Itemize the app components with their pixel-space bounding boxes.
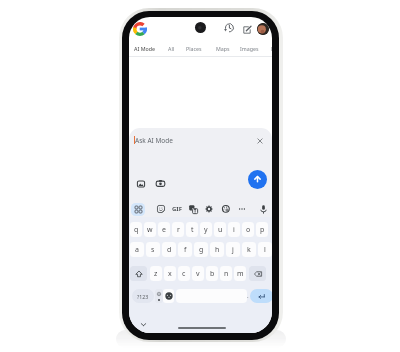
button[interactable]: Account: [257, 23, 269, 35]
button[interactable]: e: [158, 222, 170, 237]
staticText: N: [271, 45, 272, 52]
button[interactable]: Language: [163, 289, 174, 303]
button[interactable]: More options: [235, 202, 249, 216]
staticText: t: [191, 225, 194, 235]
staticText: .: [247, 292, 249, 300]
staticText: Maps: [216, 45, 230, 52]
button[interactable]: Images: [240, 45, 259, 52]
staticText: j: [232, 245, 234, 255]
button[interactable]: Camera: [155, 178, 166, 189]
button[interactable]: w: [144, 222, 156, 237]
staticText: o: [246, 225, 251, 235]
button[interactable]: b: [206, 266, 218, 281]
staticText: g: [199, 245, 204, 255]
button[interactable]: Emoji: [155, 289, 163, 303]
button[interactable]: i: [228, 222, 240, 237]
staticText: w: [147, 225, 153, 235]
button[interactable]: m: [234, 266, 246, 281]
button[interactable]: Places: [186, 45, 202, 52]
button[interactable]: .: [246, 289, 249, 303]
button[interactable]: u: [214, 222, 226, 237]
button[interactable]: Enter: [250, 289, 272, 303]
button[interactable]: k: [242, 242, 256, 257]
staticText: f: [184, 245, 187, 255]
staticText: y: [204, 225, 208, 235]
button[interactable]: Compose: [241, 24, 252, 35]
button[interactable]: c: [178, 266, 190, 281]
button[interactable]: Send: [248, 170, 267, 189]
button[interactable]: [130, 266, 147, 281]
staticText: i: [233, 225, 235, 235]
staticText: e: [162, 225, 166, 235]
staticText: n: [224, 269, 229, 279]
staticText: h: [215, 245, 220, 255]
staticText: ?123: [137, 293, 149, 300]
button[interactable]: d: [162, 242, 176, 257]
button[interactable]: l: [258, 242, 272, 257]
button[interactable]: Gallery: [135, 178, 146, 189]
button[interactable]: g: [194, 242, 208, 257]
button[interactable]: f: [178, 242, 192, 257]
button[interactable]: y: [200, 222, 212, 237]
button[interactable]: v: [192, 266, 204, 281]
button[interactable]: z: [150, 266, 162, 281]
button[interactable]: ?123: [132, 289, 154, 303]
staticText: a: [135, 245, 139, 255]
button[interactable]: q: [130, 222, 142, 237]
button[interactable]: Voice input: [256, 202, 270, 216]
button[interactable]: History: [223, 22, 235, 34]
button[interactable]: r: [172, 222, 184, 237]
staticText: v: [196, 269, 200, 279]
button[interactable]: n: [220, 266, 232, 281]
button[interactable]: j: [226, 242, 240, 257]
button[interactable]: o: [242, 222, 254, 237]
staticText: z: [154, 269, 158, 279]
button[interactable]: Close: [254, 135, 266, 147]
button[interactable]: h: [210, 242, 224, 257]
button[interactable]: t: [186, 222, 198, 237]
staticText: c: [182, 269, 186, 279]
button[interactable]: N: [271, 45, 272, 52]
staticText: q: [134, 225, 139, 235]
button[interactable]: a: [130, 242, 144, 257]
staticText: u: [218, 225, 223, 235]
button[interactable]: Maps: [216, 45, 230, 52]
button[interactable]: AI Mode: [134, 45, 156, 52]
button[interactable]: [249, 266, 266, 281]
staticText: m: [237, 269, 244, 279]
button[interactable]: p: [256, 222, 268, 237]
staticText: s: [151, 245, 155, 255]
button[interactable]: Settings: [202, 202, 216, 216]
button[interactable]: Translate: [186, 202, 200, 216]
staticText: r: [177, 225, 180, 235]
button[interactable]: x: [164, 266, 176, 281]
button[interactable]: Theme: [219, 202, 233, 216]
staticText: p: [260, 225, 265, 235]
staticText: b: [210, 269, 215, 279]
staticText: Images: [240, 45, 259, 52]
button[interactable]: Hide keyboard: [138, 319, 148, 329]
button[interactable]: GIF: [172, 205, 182, 213]
staticText: l: [264, 245, 266, 255]
button[interactable]: All: [168, 45, 175, 52]
button[interactable]: s: [146, 242, 160, 257]
button[interactable]: Keyboard modes: [131, 203, 145, 216]
button[interactable]: Stickers: [154, 202, 168, 216]
staticText: All: [168, 45, 175, 52]
staticText: AI Mode: [134, 45, 156, 52]
staticText: k: [247, 245, 251, 255]
staticText: Ask AI Mode: [135, 136, 173, 145]
staticText: Places: [186, 45, 202, 52]
staticText: d: [167, 245, 172, 255]
staticText: x: [168, 269, 172, 279]
